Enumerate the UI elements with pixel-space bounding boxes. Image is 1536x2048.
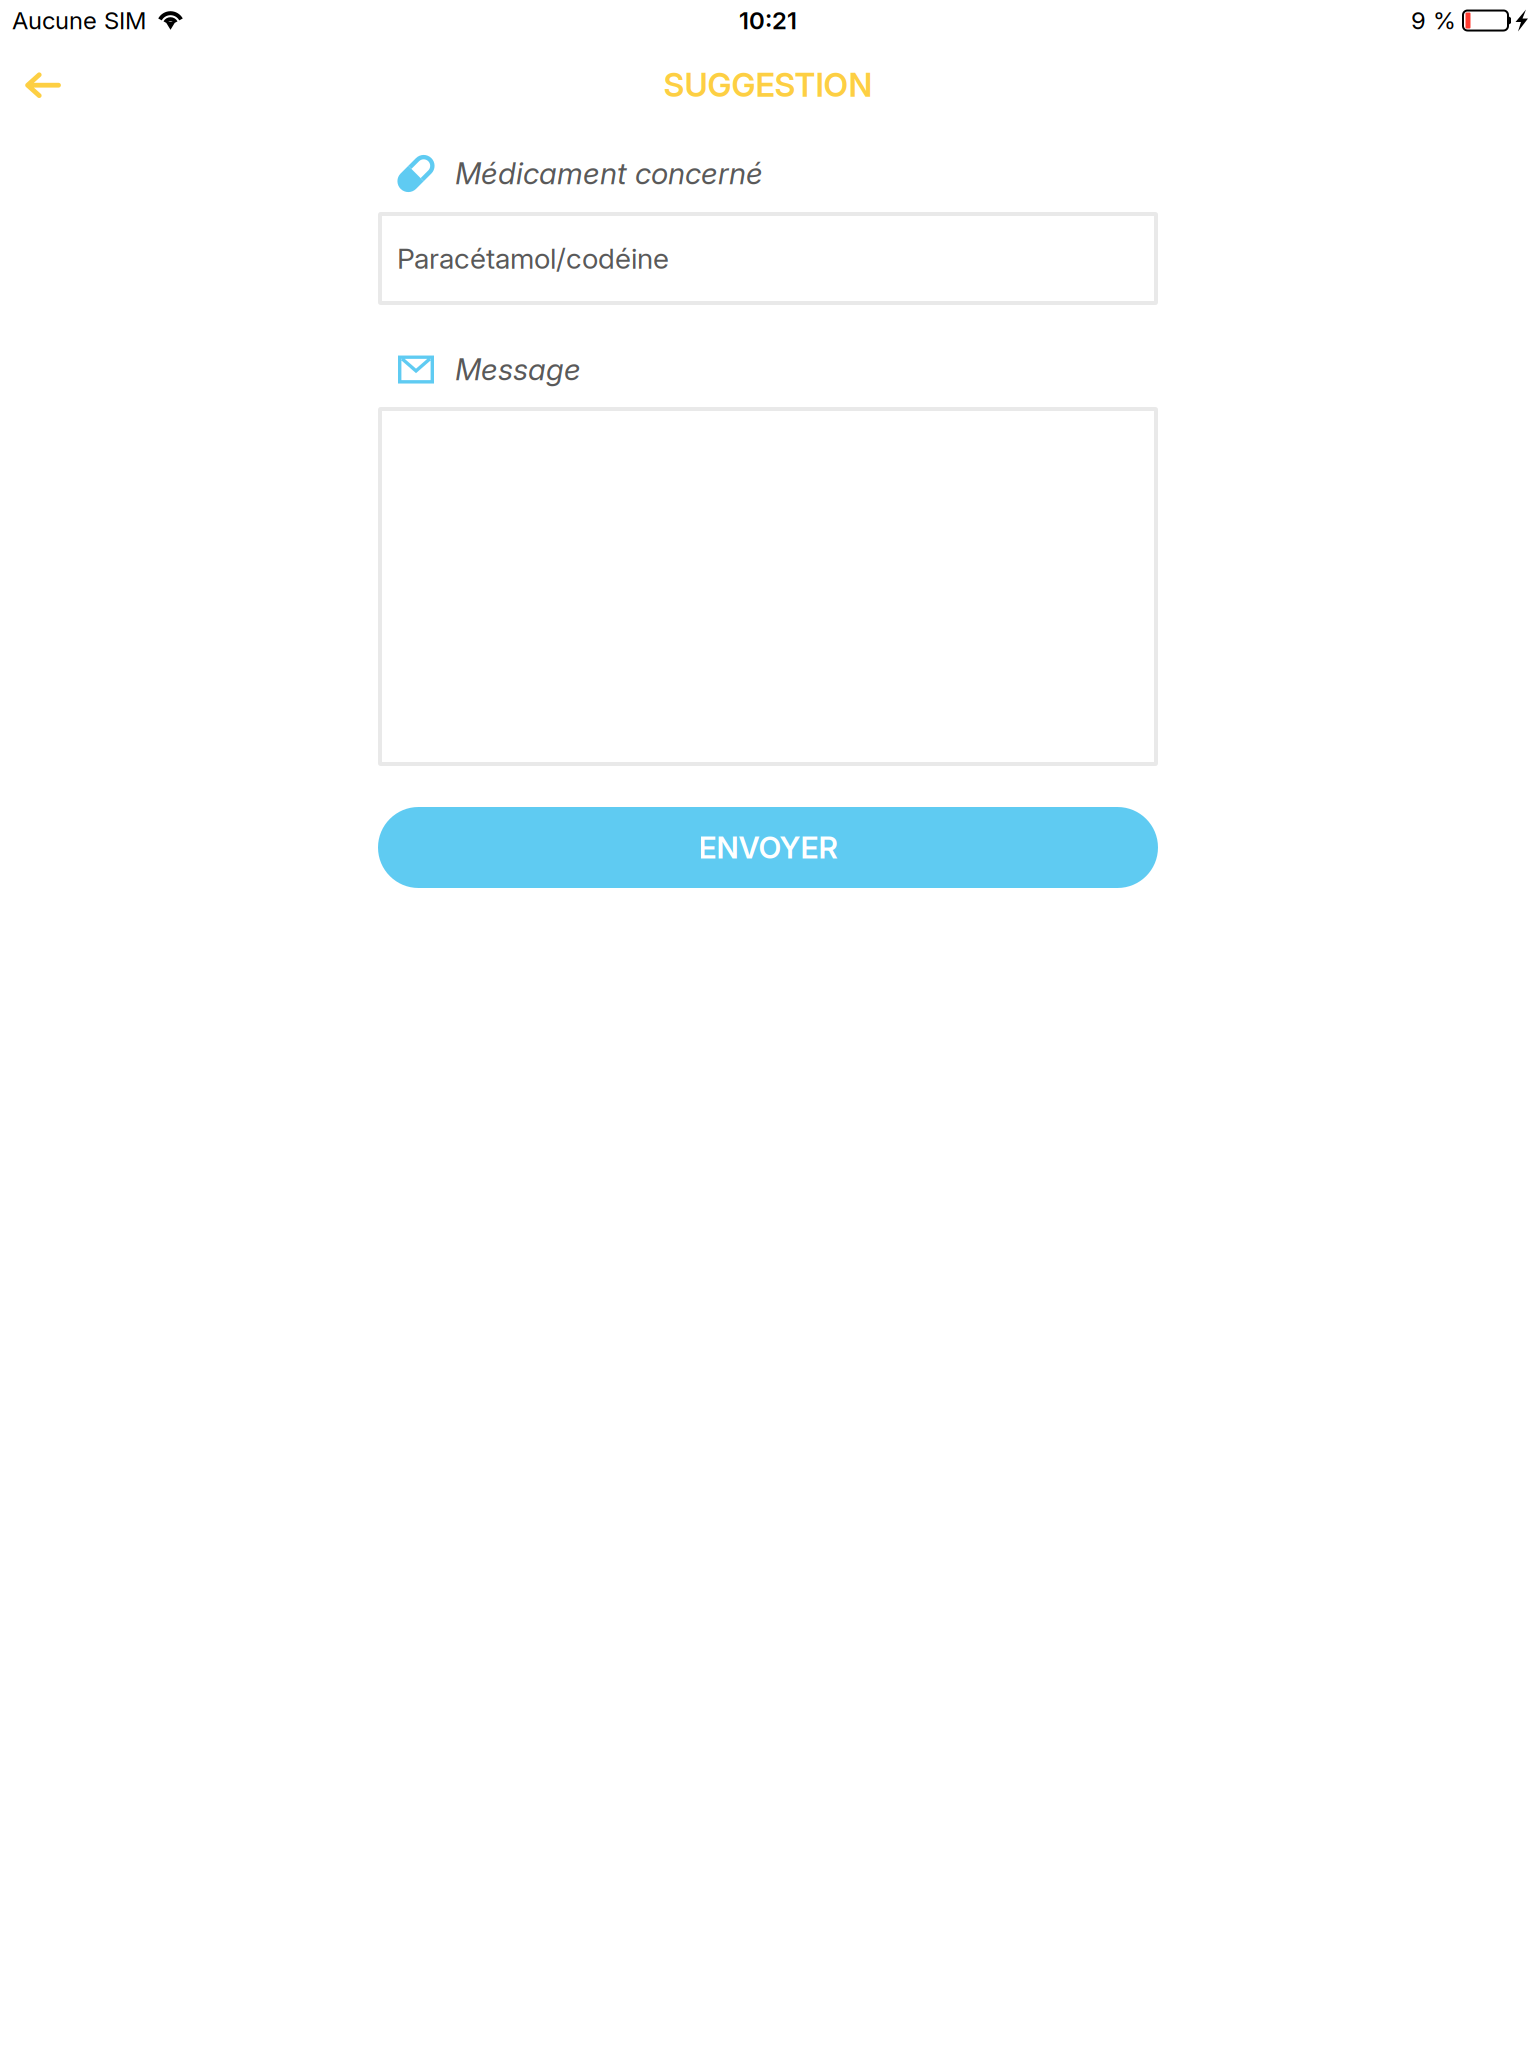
button[interactable]: Message [378,407,1158,766]
staticText: Aucune SIM [12,6,146,35]
staticText: Paracétamol/codéine [397,241,669,276]
staticText: Médicament concerné [455,155,763,191]
staticText: SUGGESTION [663,65,872,105]
button[interactable]: ENVOYER [378,807,1158,888]
staticText: ENVOYER [698,829,837,866]
button[interactable]: Back [0,41,86,129]
button[interactable]: Paracétamol/codéine [378,212,1158,305]
staticText: 9 % [1411,6,1456,35]
staticText: Message [455,351,581,387]
staticText: 10:21 [739,6,797,35]
